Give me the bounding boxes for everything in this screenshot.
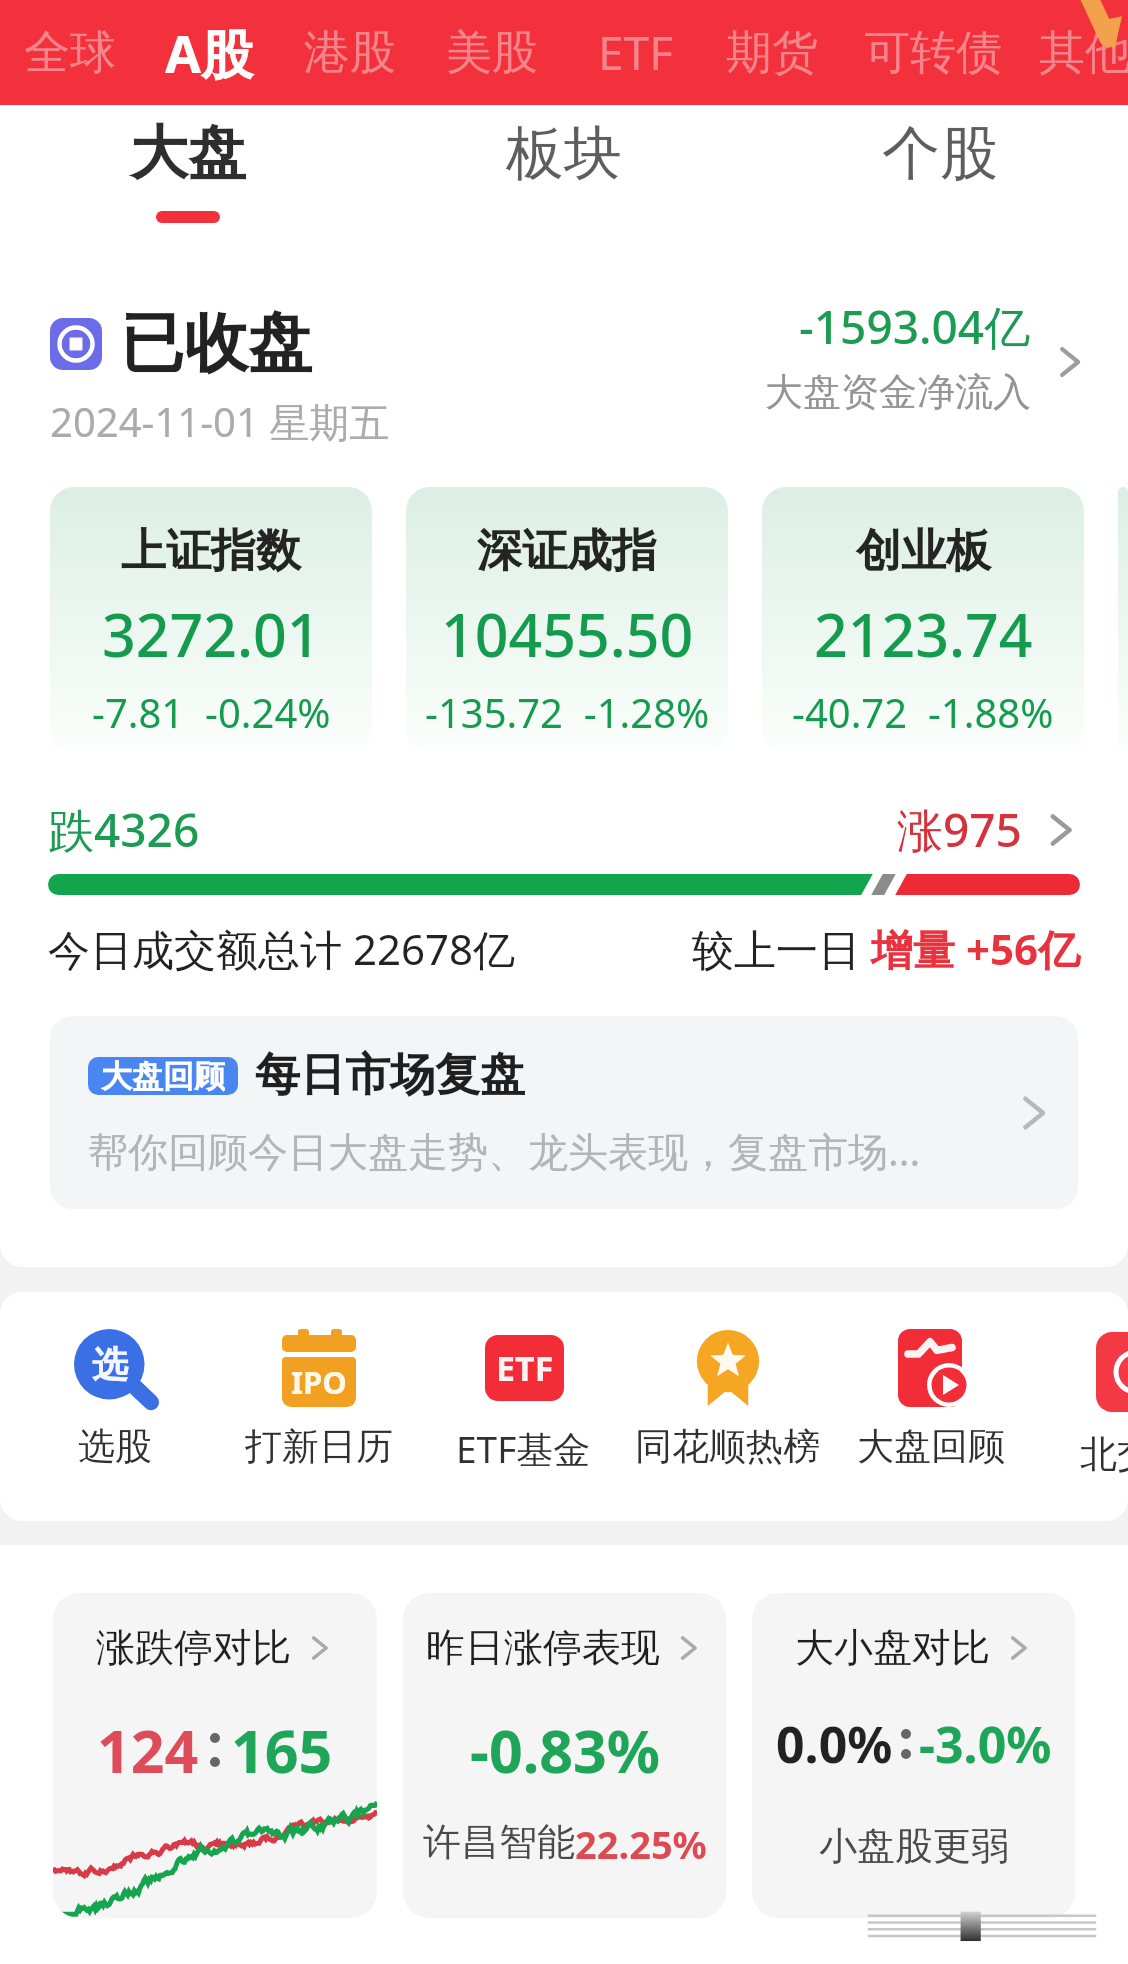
staticText: 涨975 [897,798,1022,861]
staticText: 每日市场复盘 [255,1047,525,1104]
staticText: 大盘回顾 [857,1423,1005,1470]
staticText: -1593.04亿 [799,295,1031,358]
button[interactable]: 可转债 [843,0,1023,105]
staticText: 港股 [304,24,396,82]
button[interactable]: 深证成指 [406,487,728,752]
staticText: 昨日涨停表现 [426,1623,660,1672]
staticText: 期货 [726,24,818,82]
button[interactable]: 板块 [376,105,752,245]
staticText: 0.0% [776,1710,893,1778]
staticText: 增量 +56亿 [871,920,1080,977]
button[interactable]: 大小盘对比 [752,1593,1075,1918]
staticText: 选 [92,1342,128,1387]
staticText: 165 [231,1710,333,1790]
button[interactable]: IPO [209,1329,429,1470]
button[interactable]: 美股 [402,0,582,105]
staticText: 较上一日 [692,920,871,977]
staticText: 全球 [24,24,116,82]
staticText: -40.72 -1.88% [792,685,1054,739]
button[interactable]: 期货 [682,0,862,105]
button[interactable]: 个股 [752,105,1128,245]
staticText: 同花顺热榜 [635,1423,820,1470]
staticText: ETF [496,1345,554,1391]
staticText: 大小盘对比 [795,1623,990,1672]
button[interactable]: A股 [119,0,299,105]
staticText: ETF基金 [456,1423,591,1474]
staticText: 3272.01 [102,594,321,674]
staticText: 2024-11-01 星期五 [50,394,390,449]
staticText: 许昌智能 [423,1818,575,1866]
staticText: 10455.50 [441,594,694,674]
button[interactable]: 跌4326 [48,798,1080,861]
button[interactable]: 大盘回顾 [821,1329,1041,1470]
staticText: 可转债 [864,24,1002,82]
staticText: 大盘 [130,117,246,190]
staticText: 选股 [78,1423,152,1470]
button[interactable]: 大盘 [0,105,376,245]
button[interactable]: 选 [5,1329,225,1470]
staticText: 小盘股更弱 [819,1822,1009,1870]
staticText: ETF [598,21,674,84]
staticText: 上证指数 [121,523,301,580]
staticText: 北交所 [1080,1431,1128,1478]
button[interactable]: 其他 [995,0,1128,105]
staticText: 板块 [506,117,622,190]
staticText: 美股 [446,24,538,82]
staticText: -3.0% [919,1710,1052,1778]
staticText: 大盘资金净流入 [765,368,1031,416]
staticText: 22.25% [575,1818,707,1870]
staticText: 深证成指 [477,523,657,580]
staticText: 其他 [1039,24,1128,82]
staticText: -135.72 -1.28% [425,685,710,739]
button[interactable]: 港股 [260,0,440,105]
button[interactable]: 已收盘 [50,303,1088,449]
button[interactable]: 涨跌停对比 [53,1593,377,1918]
staticText: 已收盘 [120,303,312,384]
other: Scroll position [863,1910,1101,1942]
staticText: 跌4326 [48,798,200,861]
staticText: 2123.74 [814,594,1033,674]
staticText: 帮你回顾今日大盘走势、龙头表现，复盘市场... [88,1123,921,1178]
button[interactable]: 上证指数 [50,487,372,752]
staticText: 创业板 [856,523,991,580]
staticText: -7.81 -0.24% [92,685,331,739]
button[interactable]: 同花顺热榜 [617,1329,837,1470]
staticText: -0.83% [470,1710,660,1790]
staticText: 124 [97,1710,199,1790]
staticText: 个股 [882,117,998,190]
staticText: IPO [291,1361,347,1403]
staticText: 今日成交额总计 22678亿 [48,920,516,977]
button[interactable]: 昨日涨停表现 [403,1593,726,1918]
button[interactable]: 大盘回顾 [50,1016,1078,1209]
button[interactable]: ETF [413,1329,633,1474]
button[interactable]: ETF [546,0,726,105]
staticText: 打新日历 [245,1423,393,1470]
staticText: 大盘回顾 [101,1057,225,1095]
other: Swipe for more tabs [1078,0,1128,60]
button[interactable]: 创业板 [762,487,1084,752]
staticText: A股 [165,17,253,88]
button[interactable]: 全球 [0,0,160,105]
button[interactable]: 北交所 [1025,1329,1128,1478]
staticText: 涨跌停对比 [96,1623,291,1672]
